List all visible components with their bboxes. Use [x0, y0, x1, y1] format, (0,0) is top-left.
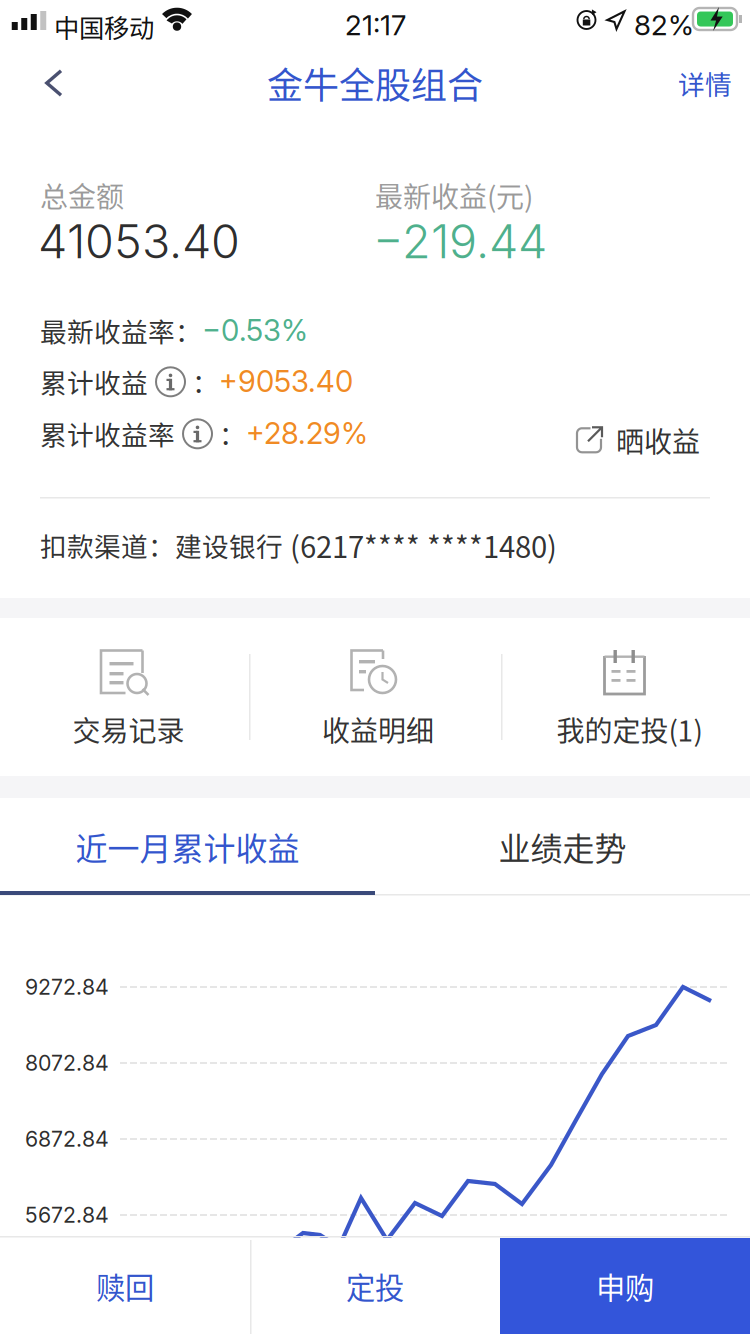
- staticText: 8072.84: [25, 1050, 109, 1076]
- button[interactable]: Back: [0, 48, 110, 118]
- button[interactable]: 赎回: [0, 1238, 250, 1334]
- staticText: −0.53%: [202, 313, 308, 348]
- button[interactable]: 晒收益: [575, 410, 700, 470]
- button[interactable]: 我的定投(1): [501, 618, 750, 776]
- button[interactable]: 申购: [500, 1238, 750, 1334]
- staticText: 6872.84: [25, 1126, 109, 1152]
- button[interactable]: 收益明细: [249, 618, 501, 776]
- staticText: 晒收益: [616, 420, 700, 460]
- button[interactable]: 近一月累计收益: [0, 798, 375, 895]
- staticText: 中国移动: [54, 8, 154, 45]
- button[interactable]: 详情: [640, 48, 750, 118]
- staticText: 详情: [678, 64, 732, 102]
- staticText: 最新收益率：: [40, 311, 202, 350]
- staticText: ：: [219, 414, 246, 453]
- staticText: 累计收益: [40, 362, 148, 401]
- staticText: 9272.84: [25, 974, 109, 1000]
- staticText: 近一月累计收益: [75, 823, 299, 870]
- button[interactable]: 定投: [250, 1238, 500, 1334]
- staticText: 最新收益(元): [375, 175, 533, 215]
- staticText: +9053.40: [219, 364, 353, 399]
- button[interactable]: 业绩走势: [375, 798, 750, 895]
- staticText: ：: [192, 362, 219, 401]
- staticText: 定投: [346, 1265, 404, 1307]
- staticText: 41053.40: [38, 213, 240, 269]
- staticText: 交易记录: [72, 709, 184, 749]
- staticText: −219.44: [373, 213, 547, 269]
- staticText: 82%: [634, 8, 694, 42]
- staticText: 扣款渠道：建设银行: [40, 526, 283, 564]
- staticText: 申购: [596, 1265, 654, 1307]
- staticText: 累计收益率: [40, 414, 175, 453]
- button[interactable]: 交易记录: [0, 618, 249, 776]
- staticText: (6217**** ****1480): [283, 524, 557, 566]
- staticText: 总金额: [40, 175, 124, 215]
- staticText: 赎回: [96, 1265, 154, 1307]
- staticText: 收益明细: [322, 709, 434, 749]
- staticText: +28.29%: [246, 416, 368, 451]
- staticText: 金牛全股组合: [267, 57, 483, 109]
- staticText: 业绩走势: [498, 823, 626, 870]
- staticText: 我的定投(1): [556, 709, 702, 749]
- staticText: 5672.84: [25, 1202, 109, 1228]
- staticText: 21:17: [345, 8, 406, 42]
